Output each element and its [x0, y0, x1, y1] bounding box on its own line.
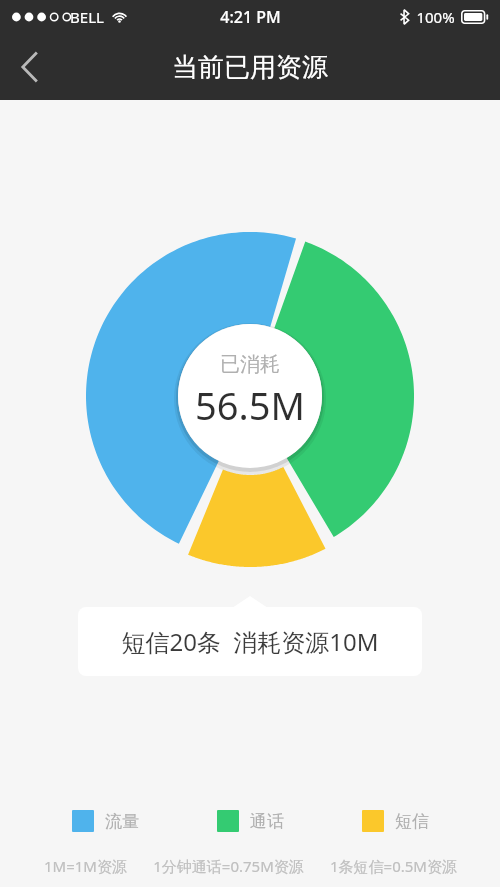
staticText: 4:21 PM: [220, 6, 281, 28]
staticText: 当前已用资源: [172, 51, 328, 84]
staticText: 1分钟通话=0.75M资源: [153, 856, 304, 876]
staticText: 1M=1M资源: [44, 856, 127, 876]
button[interactable]: 短信: [362, 810, 429, 832]
button[interactable]: 通话: [217, 810, 284, 832]
button[interactable]: 短信20条 消耗资源10M: [78, 607, 422, 676]
staticText: 通话: [250, 811, 284, 832]
staticText: BELL: [70, 7, 104, 27]
staticText: 已消耗: [220, 352, 280, 377]
staticText: 流量: [105, 811, 139, 832]
staticText: 短信20条 消耗资源10M: [121, 625, 379, 658]
staticText: 56.5M: [195, 379, 305, 431]
button[interactable]: 流量: [72, 810, 139, 832]
staticText: 100%: [416, 7, 455, 27]
button[interactable]: Back: [0, 37, 60, 97]
staticText: 1条短信=0.5M资源: [330, 856, 457, 876]
staticText: 短信: [395, 811, 429, 832]
